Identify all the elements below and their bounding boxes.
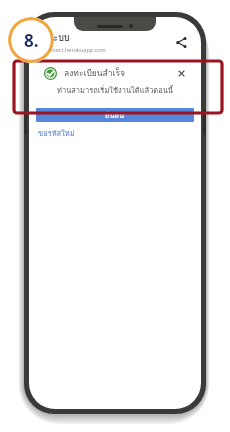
staticText: ลงทะเบียนสำเร็จ	[64, 66, 175, 80]
staticText: 8.	[24, 29, 39, 52]
button[interactable]: Close	[175, 67, 187, 79]
staticText: ท่านสามารถเริ่มใช้งานได้แล้วตอนนี้	[36, 84, 194, 96]
staticText: ขอรหัสใหม่	[38, 127, 75, 139]
button[interactable]: ยืนยัน	[36, 108, 194, 122]
staticText: connect.herokuapp.com	[43, 46, 106, 53]
button[interactable]: Share	[171, 32, 191, 52]
staticText: สู่ระบบ	[43, 31, 70, 45]
button[interactable]: ขอรหัสใหม่	[38, 127, 75, 139]
staticText: ยืนยัน	[105, 109, 125, 121]
